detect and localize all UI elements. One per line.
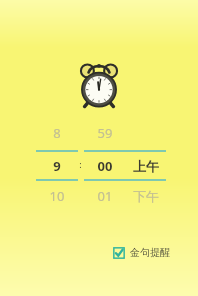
button[interactable]: 9	[36, 157, 78, 175]
staticText: 59	[84, 124, 126, 142]
staticText: 01	[84, 187, 126, 205]
button[interactable]: 59	[84, 124, 126, 142]
button[interactable]: 8	[36, 124, 78, 142]
staticText: 00	[84, 157, 126, 175]
staticText: 下午	[126, 188, 166, 204]
button[interactable]: 下午	[126, 187, 166, 205]
button[interactable]: 金句提醒	[111, 244, 172, 261]
button[interactable]: 10	[36, 187, 78, 205]
staticText: 上午	[126, 158, 166, 174]
other: Alarm clock	[80, 63, 118, 107]
button[interactable]: 00	[84, 157, 126, 175]
staticText: 9	[36, 157, 78, 175]
button[interactable]: 01	[84, 187, 126, 205]
staticText: 8	[36, 124, 78, 142]
staticText: 10	[36, 187, 78, 205]
staticText: :	[76, 158, 85, 170]
button[interactable]: 上午	[126, 157, 166, 175]
staticText: 金句提醒	[130, 246, 170, 259]
